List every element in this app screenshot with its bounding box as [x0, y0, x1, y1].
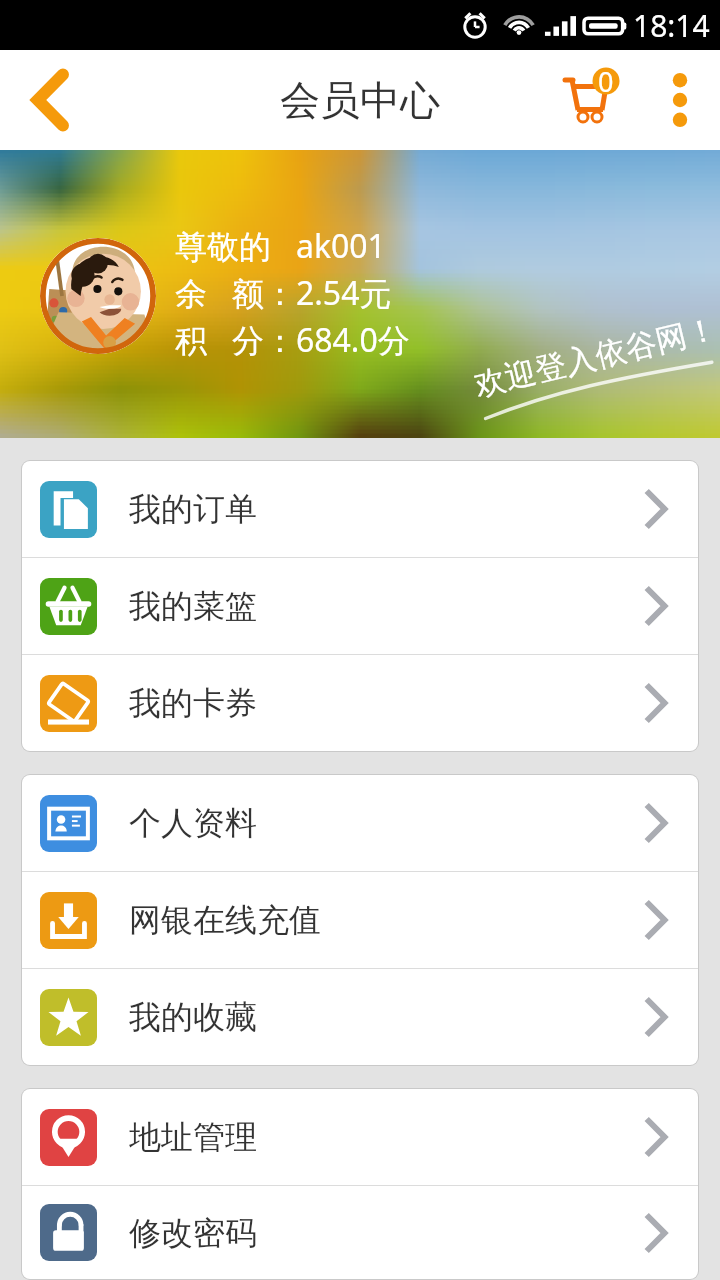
staticText: 我的菜篮: [129, 586, 257, 626]
button[interactable]: 地址管理: [22, 1089, 698, 1185]
staticText: 尊敬的 ak001: [175, 224, 386, 268]
staticText: 地址管理: [129, 1117, 257, 1157]
staticText: 会员中心: [280, 75, 440, 125]
button[interactable]: 我的订单: [22, 461, 698, 557]
staticText: 余 额：2.54元: [175, 271, 392, 315]
button[interactable]: Back: [0, 50, 100, 150]
staticText: 个人资料: [129, 803, 257, 843]
staticText: 18:14: [633, 5, 710, 46]
staticText: 欢迎登入依谷网！: [471, 309, 720, 405]
staticText: 积 分：684.0分: [175, 318, 410, 362]
staticText: 0: [598, 63, 614, 100]
button[interactable]: More options: [640, 50, 720, 150]
button[interactable]: 我的菜篮: [22, 558, 698, 654]
button[interactable]: Shopping cart: [544, 50, 640, 150]
staticText: 我的收藏: [129, 997, 257, 1037]
staticText: 我的订单: [129, 489, 257, 529]
button[interactable]: 个人资料: [22, 775, 698, 871]
staticText: 我的卡券: [129, 683, 257, 723]
button[interactable]: 修改密码: [22, 1186, 698, 1279]
button[interactable]: 网银在线充值: [22, 872, 698, 968]
button[interactable]: 我的收藏: [22, 969, 698, 1065]
staticText: 修改密码: [129, 1213, 257, 1253]
button[interactable]: 我的卡券: [22, 655, 698, 751]
staticText: 网银在线充值: [129, 900, 321, 940]
